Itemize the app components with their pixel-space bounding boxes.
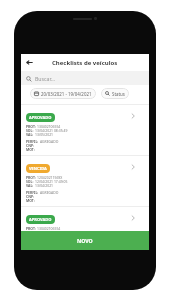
staticText: AGREGADO xyxy=(40,139,59,143)
staticText: 13/04/2021 08:35:49 xyxy=(35,230,68,234)
staticText: 130402106554 xyxy=(37,226,61,230)
staticText: PERFIL: xyxy=(26,139,39,143)
staticText: MOT: xyxy=(26,147,35,151)
staticText: APROVADO xyxy=(29,115,52,120)
staticText: VAL: xyxy=(26,132,34,136)
staticText: Checklists de veículos xyxy=(52,59,118,67)
staticText: 120420211569X xyxy=(37,175,63,179)
staticText: VENCIDA xyxy=(29,166,47,171)
staticText: AGREGADO xyxy=(40,190,59,194)
staticText: SOL: xyxy=(26,179,34,183)
button[interactable]: APROVADO xyxy=(21,105,149,155)
button[interactable]: NOVO xyxy=(21,231,149,250)
staticText: Buscar... xyxy=(35,75,55,82)
button[interactable]: Status xyxy=(101,88,129,99)
staticText: 13/05/2021 xyxy=(35,132,54,136)
button[interactable]: 20/03/2021 - 19/04/2021 xyxy=(30,88,96,99)
staticText: 13/04/2021 xyxy=(35,183,54,187)
staticText: 12/04/2021 17:49:05 xyxy=(35,179,68,183)
button[interactable]: Back xyxy=(23,56,35,68)
staticText: CNP: xyxy=(26,143,34,147)
staticText: PROT: xyxy=(26,175,36,179)
staticText: APROVADO xyxy=(29,217,52,222)
staticText: Status xyxy=(112,91,125,97)
staticText: SOL: xyxy=(26,128,34,132)
staticText: PROT: xyxy=(26,124,36,128)
staticText: MOT: xyxy=(26,198,35,202)
button[interactable]: APROVADO xyxy=(21,207,149,250)
staticText: PROT: xyxy=(26,226,36,230)
staticText: VAL: xyxy=(26,183,34,187)
staticText: NOVO xyxy=(77,237,93,244)
button[interactable]: Buscar... xyxy=(21,71,149,85)
staticText: 130402106554 xyxy=(37,124,61,128)
button[interactable]: VENCIDA xyxy=(21,156,149,206)
staticText: 13/04/2021 08:35:49 xyxy=(35,128,68,132)
staticText: PERFIL: xyxy=(26,190,39,194)
staticText: 20/03/2021 - 19/04/2021 xyxy=(41,91,92,97)
staticText: SOL: xyxy=(26,230,34,234)
staticText: CNP: xyxy=(26,194,34,198)
